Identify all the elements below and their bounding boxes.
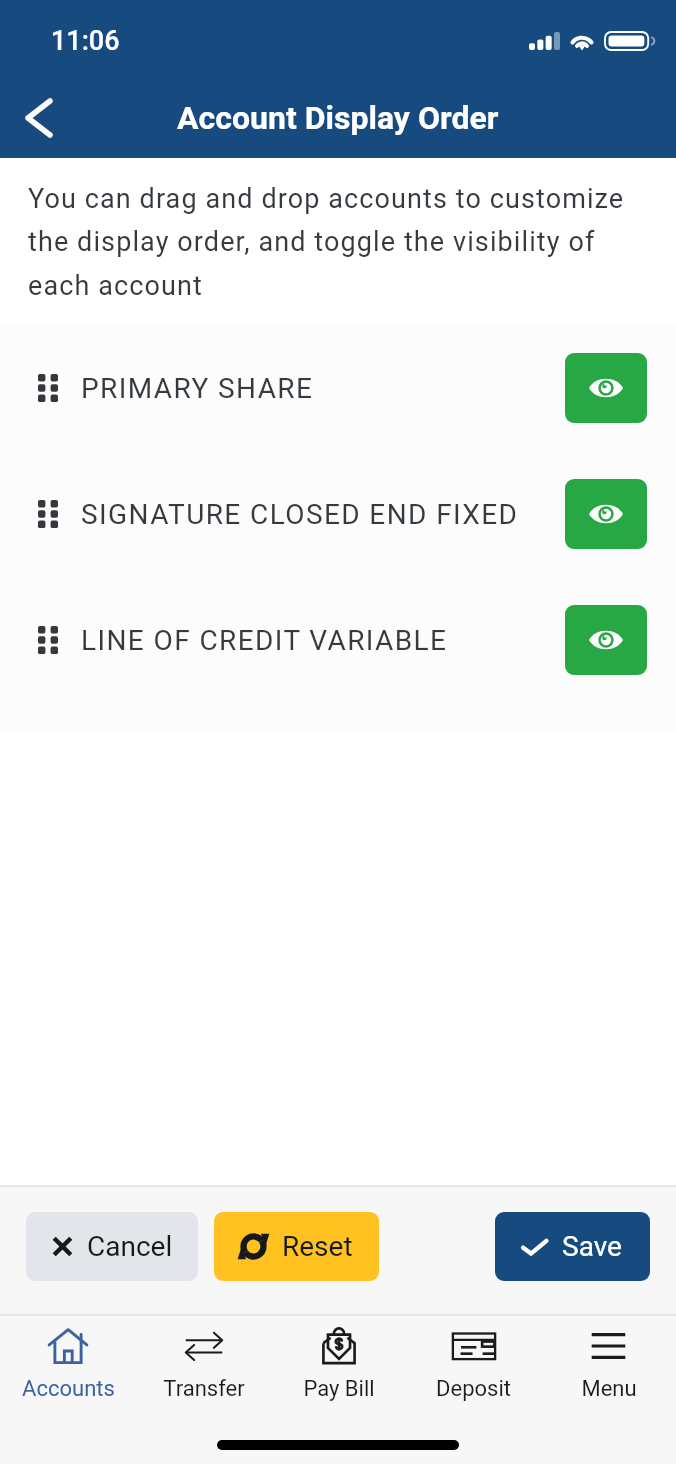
staticText: SIGNATURE CLOSED END FIXED [81,498,519,531]
button[interactable]: Menu [541,1316,676,1464]
button[interactable]: Toggle visibility [565,605,647,675]
staticText: Menu [581,1376,637,1402]
staticText: Accounts [22,1376,115,1402]
staticText: Account Display Order [177,99,499,137]
staticText: Pay Bill [303,1376,375,1402]
button[interactable]: Cancel [26,1212,198,1281]
button[interactable]: Save [495,1212,650,1281]
button[interactable]: Reset [214,1212,379,1281]
button[interactable]: LINE OF CREDIT VARIABLE [0,577,676,703]
button[interactable]: Deposit [406,1316,541,1464]
staticText: Save [562,1230,622,1263]
button[interactable]: Toggle visibility [565,353,647,423]
button[interactable]: PRIMARY SHARE [0,325,676,451]
button[interactable]: SIGNATURE CLOSED END FIXED [0,451,676,577]
staticText: PRIMARY SHARE [81,372,314,405]
staticText: Reset [282,1230,353,1263]
button[interactable]: Transfer [136,1316,271,1464]
button[interactable]: Pay Bill [271,1316,406,1464]
staticText: LINE OF CREDIT VARIABLE [81,624,448,657]
staticText: You can drag and drop accounts to custom… [28,183,643,302]
staticText: 11:06 [51,25,120,57]
staticText: Transfer [163,1376,245,1402]
staticText: Cancel [87,1230,173,1263]
button[interactable]: Back [0,78,96,158]
button[interactable]: Accounts [0,1316,136,1464]
button[interactable]: Toggle visibility [565,479,647,549]
staticText: Deposit [436,1376,511,1402]
